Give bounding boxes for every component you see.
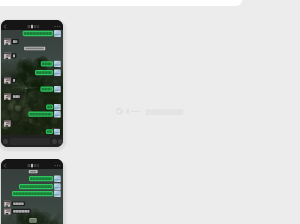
button[interactable]: More options — [58, 139, 63, 144]
button[interactable]: Voice input — [3, 139, 8, 144]
button[interactable]: Emoji — [52, 139, 57, 144]
